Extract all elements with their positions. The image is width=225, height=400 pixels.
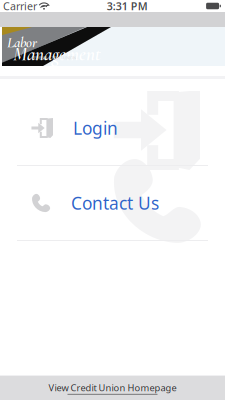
staticText: View Credit Union Homepage	[48, 381, 176, 394]
staticText: Contact Us	[71, 191, 159, 214]
button[interactable]: Contact Us	[0, 166, 225, 240]
button[interactable]: Login	[0, 91, 225, 165]
staticText: Login	[73, 116, 118, 139]
staticText: FEDERAL CREDIT UNION	[32, 55, 76, 60]
staticText: Carrier	[3, 0, 37, 13]
staticText: 3:31 PM	[107, 0, 148, 13]
staticText: Labor	[7, 34, 37, 51]
button[interactable]: View Credit Union Homepage	[0, 375, 225, 400]
staticText: Management	[13, 43, 101, 66]
